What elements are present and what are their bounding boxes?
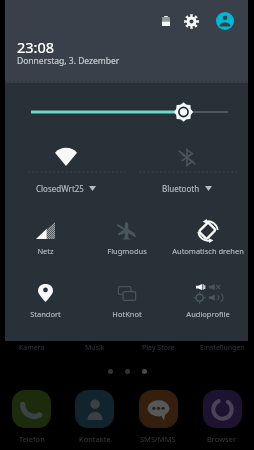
button[interactable]: Bluetooth	[126, 137, 248, 194]
button[interactable]: Telefon	[0, 390, 63, 444]
button[interactable]: Kontakte	[63, 390, 126, 444]
button[interactable]: HotKnot	[86, 271, 167, 319]
button[interactable]: SMS/MMS	[126, 390, 190, 444]
staticText: Bluetooth	[162, 183, 200, 194]
button[interactable]: Flugmodus	[86, 208, 167, 256]
staticText: ClosedWrt25	[36, 183, 84, 194]
staticText: Kontakte	[79, 434, 111, 444]
staticText: Browser	[207, 434, 237, 444]
staticText: Einstellungen	[200, 343, 245, 353]
staticText: Netz	[37, 246, 54, 256]
staticText: Kamera	[19, 343, 45, 353]
staticText: Musik	[85, 343, 105, 353]
button[interactable]: Netz	[5, 208, 86, 256]
staticText: Audioprofile	[186, 309, 230, 319]
button[interactable]: User profile	[214, 10, 236, 32]
button[interactable]: ClosedWrt25	[5, 137, 126, 194]
staticText: Standort	[30, 309, 61, 319]
staticText: 23:08	[17, 37, 55, 57]
staticText: Automatisch drehen	[172, 246, 244, 256]
button[interactable]: Settings	[181, 11, 202, 32]
button[interactable]: Browser	[190, 390, 254, 444]
button[interactable]: Automatisch drehen	[167, 208, 248, 256]
staticText: SMS/MMS	[140, 434, 176, 444]
staticText: Donnerstag, 3. Dezember	[17, 55, 120, 67]
staticText: Play Store	[142, 343, 175, 353]
staticText: Telefon	[19, 434, 45, 444]
staticText: Flugmodus	[107, 246, 147, 256]
staticText: HotKnot	[112, 309, 142, 319]
button[interactable]: Brightness slider	[5, 83, 248, 125]
button[interactable]: Audioprofile	[167, 271, 248, 319]
button[interactable]: Battery status	[156, 11, 176, 31]
button[interactable]: Standort	[5, 271, 86, 319]
